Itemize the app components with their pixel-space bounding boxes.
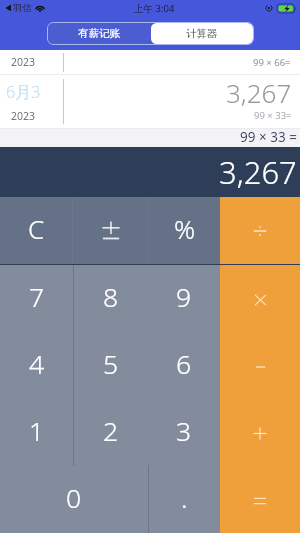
button[interactable]: . bbox=[148, 466, 220, 533]
staticText: 99 × 66= bbox=[253, 56, 291, 69]
staticText: 3 bbox=[176, 413, 192, 449]
staticText: 有薪记账 bbox=[78, 27, 120, 40]
staticText: 0 bbox=[66, 480, 82, 516]
button[interactable]: 0 bbox=[0, 466, 148, 533]
staticText: 计算器 bbox=[186, 27, 218, 40]
button[interactable]: 2 bbox=[73, 399, 148, 466]
button[interactable] bbox=[73, 197, 148, 264]
staticText: 2023 bbox=[11, 109, 36, 123]
staticText: 4 bbox=[29, 346, 45, 382]
button[interactable]: 6 bbox=[148, 332, 220, 399]
staticText: 2023 bbox=[11, 55, 36, 69]
staticText: 6月3 bbox=[6, 81, 41, 103]
button[interactable]: 6月3 bbox=[0, 75, 300, 128]
button[interactable]: 有薪记账 bbox=[47, 22, 151, 45]
button[interactable]: 2023 bbox=[0, 50, 300, 74]
staticText: % bbox=[174, 211, 196, 246]
button[interactable]: % bbox=[148, 197, 220, 264]
button[interactable]: Divide bbox=[220, 197, 300, 264]
staticText: 99 × 33 = bbox=[240, 128, 297, 146]
button[interactable]: 3 bbox=[148, 399, 220, 466]
staticText: 6 bbox=[176, 346, 192, 382]
staticText: 8 bbox=[103, 279, 119, 315]
staticText: 上午 3:04 bbox=[134, 2, 175, 15]
button[interactable]: Subtract bbox=[220, 332, 300, 399]
button[interactable]: Equals bbox=[220, 466, 300, 533]
staticText: 3,267 bbox=[226, 75, 292, 110]
button[interactable]: 9 bbox=[148, 265, 220, 332]
button[interactable]: 5 bbox=[73, 332, 148, 399]
button[interactable]: 计算器 bbox=[151, 23, 253, 44]
button[interactable]: 7 bbox=[0, 265, 73, 332]
button[interactable]: Multiply bbox=[220, 265, 300, 332]
staticText: 3,267 bbox=[219, 151, 297, 193]
button[interactable]: 8 bbox=[73, 265, 148, 332]
staticText: 羽信 bbox=[13, 2, 32, 14]
button[interactable]: Add bbox=[220, 399, 300, 466]
staticText: . bbox=[181, 480, 188, 516]
staticText: 99 × 33= bbox=[254, 109, 292, 122]
staticText: 5 bbox=[103, 346, 119, 382]
staticText: 1 bbox=[29, 413, 45, 449]
button[interactable]: C bbox=[0, 197, 73, 264]
button[interactable]: 1 bbox=[0, 399, 73, 466]
staticText: 9 bbox=[176, 279, 192, 315]
staticText: 7 bbox=[29, 279, 45, 315]
button[interactable]: 4 bbox=[0, 332, 73, 399]
staticText: C bbox=[28, 211, 45, 246]
staticText: 2 bbox=[103, 413, 119, 449]
